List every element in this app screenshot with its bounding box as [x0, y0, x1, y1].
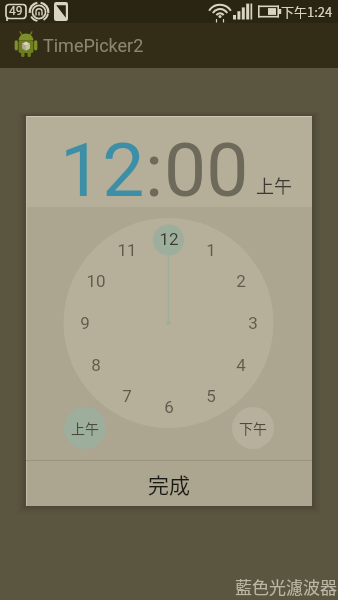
staticText: 藍色光濾波器: [235, 574, 337, 599]
staticText: 下午: [239, 418, 267, 438]
staticText: 2: [236, 271, 246, 291]
staticText: 完成: [148, 469, 190, 499]
staticText: 11: [117, 240, 137, 260]
staticText: 3: [248, 313, 258, 333]
staticText: :: [145, 126, 164, 214]
staticText: 12: [159, 229, 179, 249]
staticText: 8: [91, 355, 101, 375]
staticText: 下午1:24: [281, 2, 333, 21]
other: App icon: [14, 31, 38, 58]
staticText: 12: [60, 126, 145, 214]
staticText: 49: [9, 4, 23, 18]
staticText: 5: [206, 386, 216, 406]
staticText: 9: [80, 313, 90, 333]
staticText: 6: [164, 397, 174, 417]
button[interactable]: 上午: [64, 407, 106, 449]
staticText: 00: [164, 126, 249, 214]
staticText: TimePicker2: [43, 35, 144, 56]
staticText: 1: [206, 240, 216, 260]
staticText: 4: [236, 355, 246, 375]
button[interactable]: 完成: [26, 461, 312, 506]
staticText: 上午: [71, 418, 99, 438]
staticText: 10: [86, 271, 106, 291]
staticText: 7: [122, 386, 132, 406]
button[interactable]: 下午: [232, 407, 274, 449]
staticText: 上午: [256, 172, 292, 198]
